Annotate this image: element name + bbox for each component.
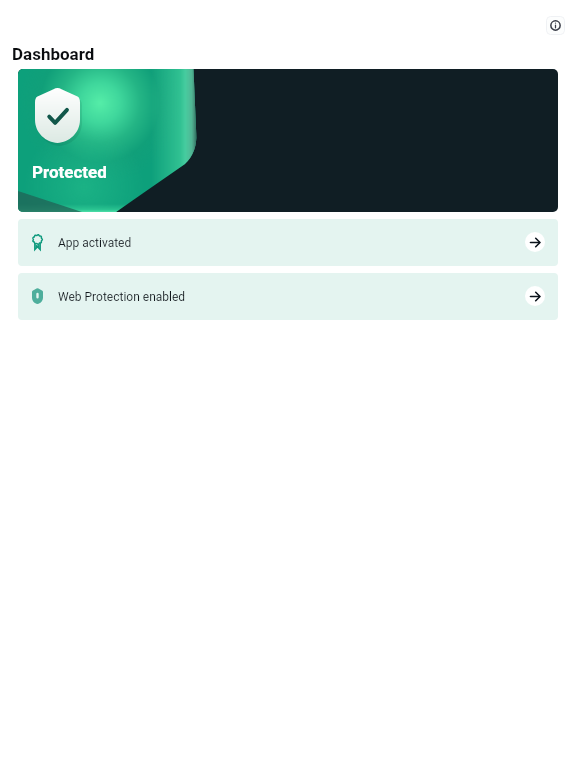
button[interactable]: Web Protection enabled [18, 273, 558, 320]
staticText: Web Protection enabled [58, 290, 186, 304]
button[interactable]: Information [546, 16, 565, 35]
button[interactable]: Open App activated [525, 232, 545, 252]
staticText: Protected [32, 162, 107, 182]
button[interactable]: Open Web Protection enabled [525, 286, 545, 306]
staticText: Dashboard [12, 44, 95, 64]
button[interactable]: App activated [18, 219, 558, 266]
button[interactable]: Protected [18, 69, 558, 212]
staticText: App activated [58, 236, 132, 250]
